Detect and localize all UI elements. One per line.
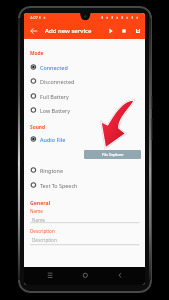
staticText: Sound <box>30 124 45 131</box>
staticText: Connected <box>40 64 68 71</box>
staticText: Audio File <box>40 136 66 143</box>
staticText: Low Battery <box>40 107 71 114</box>
button[interactable] <box>30 214 139 224</box>
button[interactable]: Save <box>134 27 142 35</box>
staticText: 4:07 <box>30 15 38 20</box>
button[interactable] <box>30 236 139 246</box>
staticText: Mode <box>30 50 44 57</box>
button[interactable]: Low Battery <box>29 103 139 117</box>
staticText: Description <box>32 237 57 243</box>
button[interactable]: Stop <box>120 27 128 35</box>
staticText: Add new service <box>45 27 92 35</box>
button[interactable]: Recent apps <box>40 267 60 285</box>
button[interactable]: Connected <box>29 60 139 74</box>
button[interactable]: Play <box>107 27 115 35</box>
staticText: Description <box>30 228 55 234</box>
button[interactable]: Text To Speech <box>29 178 139 192</box>
staticText: File Explorer <box>102 152 124 157</box>
button[interactable]: Audio File <box>29 132 139 146</box>
staticText: Ringtone <box>40 167 63 174</box>
staticText: Name <box>32 217 45 223</box>
staticText: Full Battery <box>40 93 69 100</box>
button[interactable]: Disconnected <box>29 74 139 88</box>
staticText: Name <box>30 208 43 214</box>
button[interactable]: File Explorer <box>84 150 141 159</box>
button[interactable]: Back <box>28 25 40 37</box>
button[interactable]: Home <box>75 267 95 285</box>
staticText: Disconnected <box>40 78 75 85</box>
button[interactable]: Ringtone <box>29 163 139 177</box>
staticText: General <box>30 199 51 206</box>
button[interactable]: Full Battery <box>29 89 139 103</box>
button[interactable]: Back <box>110 267 130 285</box>
staticText: Text To Speech <box>40 182 78 189</box>
